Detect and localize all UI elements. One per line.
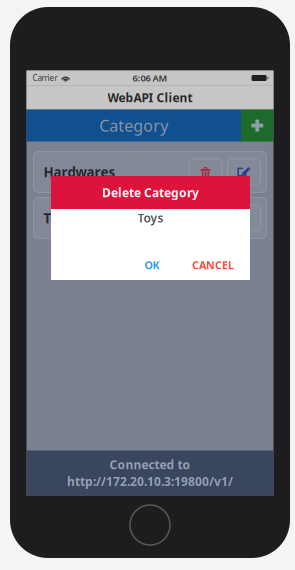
staticText: 6:06 AM xyxy=(132,72,167,84)
staticText: CANCEL xyxy=(192,258,234,272)
button[interactable]: Edit Hardwares xyxy=(227,159,260,185)
staticText: Toys xyxy=(137,210,163,226)
staticText: Toys xyxy=(43,209,73,227)
button[interactable]: OK xyxy=(137,257,167,273)
staticText: Carrier xyxy=(32,73,57,83)
button[interactable]: Delete Hardwares xyxy=(189,159,222,185)
button[interactable]: Delete Toys xyxy=(189,205,222,231)
staticText: Delete Category xyxy=(102,184,199,200)
staticText: Connected to xyxy=(109,457,190,472)
staticText: Hardwares xyxy=(43,163,115,181)
staticText: Category xyxy=(99,115,168,136)
button[interactable]: Edit Toys xyxy=(227,205,260,231)
button[interactable]: CANCEL xyxy=(191,257,235,273)
staticText: http://172.20.10.3:19800/v1/ xyxy=(67,473,233,489)
staticText: WebAPI Client xyxy=(107,89,192,105)
button[interactable]: Add category xyxy=(241,109,273,141)
staticText: OK xyxy=(144,258,159,272)
